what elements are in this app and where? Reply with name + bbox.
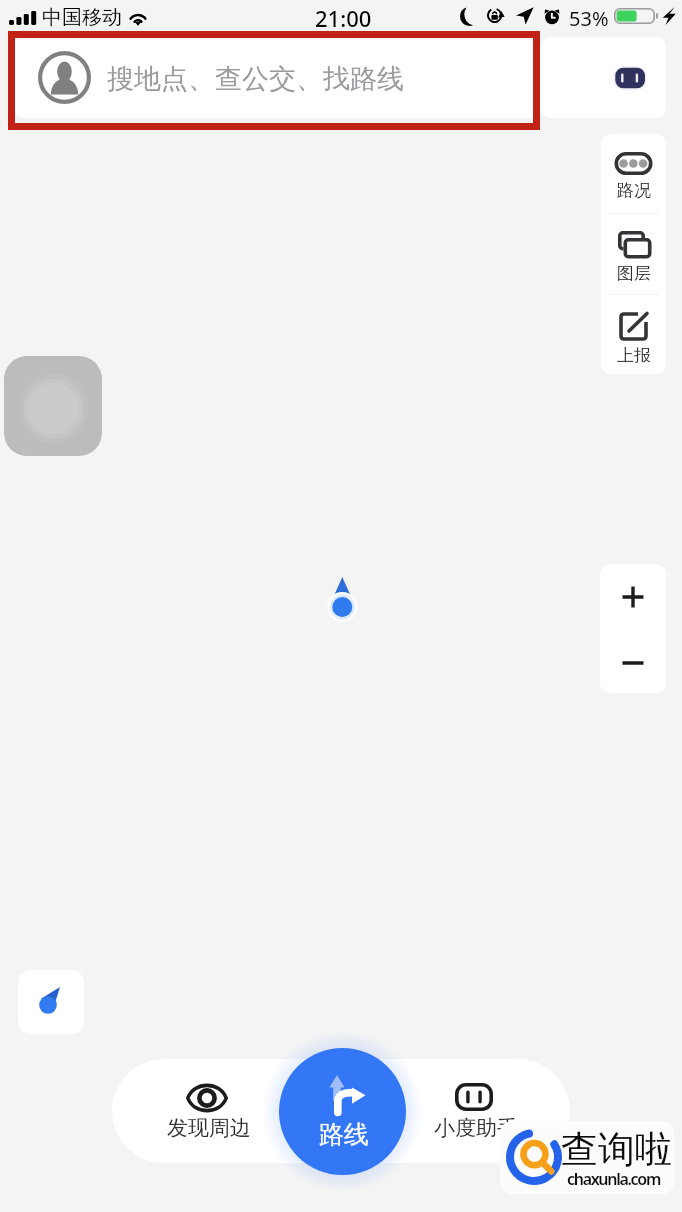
staticText: 小度助手 [434,1115,518,1141]
button[interactable]: 路线 [279,1048,406,1175]
staticText: 中国移动 [42,5,122,30]
button[interactable]: 上报 [601,294,666,374]
staticText: chaxunla.com [567,1168,660,1190]
button[interactable]: 小度助手 [404,1059,544,1163]
button[interactable]: 路况 [601,134,666,214]
staticText: 路况 [617,180,651,201]
staticText: 53% [569,5,609,32]
staticText: 路线 [319,1119,369,1150]
staticText: 上报 [617,345,651,366]
button[interactable]: 语音助手 [541,37,666,118]
staticText: 发现周边 [167,1115,251,1141]
button[interactable]: 发现周边 [137,1059,277,1163]
staticText: 查询啦 [561,1126,672,1173]
button[interactable]: 图标 [4,356,102,456]
button[interactable]: 放大 [600,564,666,630]
button[interactable]: 缩小 [600,630,666,693]
button[interactable]: 定位 [18,970,84,1034]
button[interactable]: 图层 [601,213,666,293]
staticText: 搜地点、查公交、找路线 [107,62,404,96]
button[interactable]: 搜地点、查公交、找路线 [14,37,541,118]
staticText: 21:00 [315,3,372,33]
staticText: 图层 [617,263,651,284]
